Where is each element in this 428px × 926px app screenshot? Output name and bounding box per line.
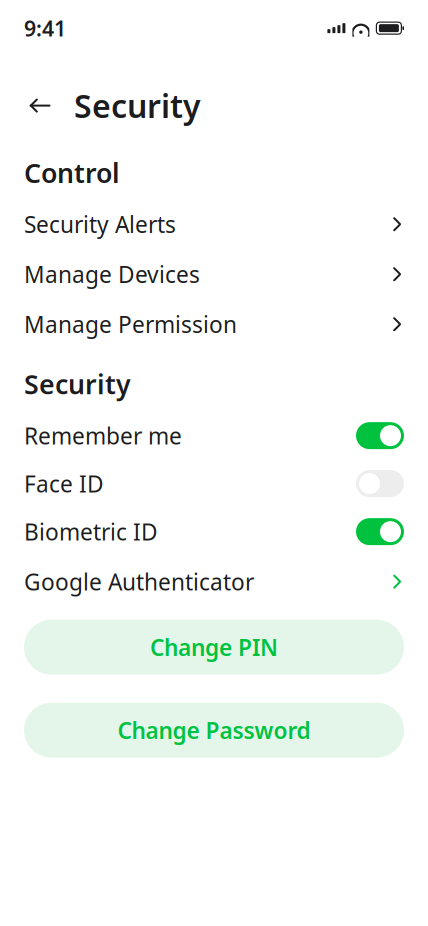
button[interactable]: Security Alerts (0, 208, 428, 240)
button[interactable]: Change Password (24, 703, 404, 758)
staticText: Google Authenticator (24, 567, 254, 597)
button[interactable]: Google Authenticator (0, 566, 428, 598)
staticText: Biometric ID (24, 517, 158, 547)
staticText: Change Password (117, 715, 310, 745)
button[interactable]: Face ID (0, 468, 428, 500)
button[interactable]: Biometric ID (0, 516, 428, 548)
button[interactable]: Back (24, 90, 56, 122)
button[interactable]: Manage Permission (0, 308, 428, 340)
staticText: Change PIN (150, 632, 278, 662)
staticText: Security Alerts (24, 209, 176, 239)
button[interactable]: Remember me (0, 420, 428, 452)
staticText: Remember me (24, 421, 182, 451)
staticText: Face ID (24, 469, 104, 499)
staticText: Control (24, 155, 120, 190)
button[interactable]: Manage Devices (0, 258, 428, 290)
staticText: Security (74, 84, 201, 127)
staticText: Security (24, 366, 131, 402)
staticText: Manage Devices (24, 259, 200, 289)
staticText: Manage Permission (24, 309, 237, 339)
staticText: 9:41 (24, 14, 66, 42)
button[interactable]: Change PIN (24, 620, 404, 675)
